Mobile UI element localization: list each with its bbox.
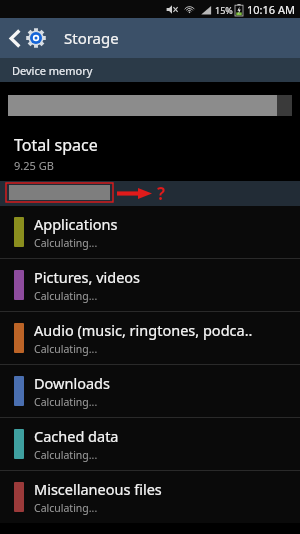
staticText: Audio (music, ringtones, podca..	[34, 320, 253, 340]
staticText: Cached data	[34, 426, 119, 446]
staticText: Calculating...	[34, 501, 98, 515]
staticText: Calculating...	[34, 395, 98, 409]
staticText: 10:16 AM	[247, 2, 295, 17]
button[interactable]: Cached data	[0, 418, 300, 470]
staticText: Calculating...	[34, 448, 98, 462]
staticText: 15%	[215, 4, 233, 16]
button[interactable]: Downloads	[0, 365, 300, 417]
staticText: Total space	[14, 134, 98, 156]
staticText: Applications	[34, 214, 118, 234]
staticText: Pictures, videos	[34, 267, 141, 287]
button[interactable]: Audio (music, ringtones, podca..	[0, 312, 300, 364]
staticText: Calculating...	[34, 236, 98, 250]
staticText: ?	[157, 182, 166, 205]
staticText: 9.25 GB	[14, 158, 54, 173]
button[interactable]: Pictures, videos	[0, 259, 300, 311]
button[interactable]: Total space	[0, 128, 300, 181]
button[interactable]: Back	[0, 18, 56, 58]
staticText: Storage	[64, 28, 119, 48]
button[interactable]: Miscellaneous files	[0, 471, 300, 523]
staticText: Downloads	[34, 373, 110, 393]
button[interactable]: Applications	[0, 206, 300, 258]
staticText: Calculating...	[34, 342, 98, 356]
staticText: Calculating...	[34, 289, 98, 303]
staticText: Miscellaneous files	[34, 479, 162, 499]
staticText: Device memory	[12, 63, 93, 78]
button[interactable]: ?	[0, 181, 300, 206]
